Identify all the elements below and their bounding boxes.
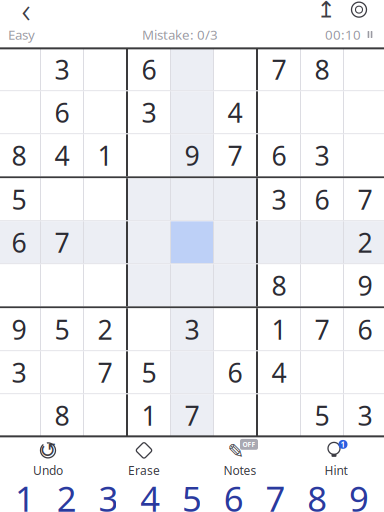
- button[interactable]: 2: [46, 478, 88, 512]
- staticText: 7: [271, 52, 286, 87]
- button[interactable]: ↺: [0, 442, 96, 476]
- button[interactable]: Cell row 2 column 6: [214, 91, 256, 133]
- button[interactable]: 4: [129, 478, 171, 512]
- button[interactable]: 1: [288, 442, 384, 476]
- button[interactable]: Cell row 8 column 6: [214, 351, 256, 393]
- button[interactable]: Cell row 7 column 5: [171, 308, 213, 350]
- button[interactable]: Settings: [342, 0, 376, 25]
- button[interactable]: Cell row 7 column 6: [214, 308, 256, 350]
- button[interactable]: 3: [88, 478, 129, 512]
- button[interactable]: Cell row 4 column 9: [344, 178, 384, 220]
- button[interactable]: Cell row 1 column 2: [41, 48, 83, 90]
- button[interactable]: Cell row 3 column 3: [84, 134, 126, 176]
- button[interactable]: Cell row 6 column 7: [258, 264, 300, 306]
- button[interactable]: Share: [310, 0, 342, 25]
- button[interactable]: 5: [171, 478, 213, 512]
- button[interactable]: Cell row 1 column 8: [301, 48, 343, 90]
- button[interactable]: Back: [6, 0, 46, 25]
- button[interactable]: Cell row 2 column 4: [128, 91, 170, 133]
- button[interactable]: Cell row 1 column 5: [171, 48, 213, 90]
- button[interactable]: 7: [255, 478, 296, 512]
- button[interactable]: Cell row 8 column 1: [0, 351, 40, 393]
- button[interactable]: Cell row 1 column 9: [344, 48, 384, 90]
- button[interactable]: Cell row 7 column 4: [128, 308, 170, 350]
- button[interactable]: Cell row 4 column 7: [258, 178, 300, 220]
- button[interactable]: Cell row 9 column 9: [344, 394, 384, 436]
- button[interactable]: Cell row 4 column 1: [0, 178, 40, 220]
- button[interactable]: Cell row 4 column 4: [128, 178, 170, 220]
- button[interactable]: Pause: [364, 28, 376, 40]
- button[interactable]: Cell row 1 column 7: [258, 48, 300, 90]
- button[interactable]: Cell row 4 column 3: [84, 178, 126, 220]
- button[interactable]: Cell row 7 column 7: [258, 308, 300, 350]
- button[interactable]: Cell row 3 column 8: [301, 134, 343, 176]
- button[interactable]: Cell row 6 column 9: [344, 264, 384, 306]
- button[interactable]: Cell row 7 column 2: [41, 308, 83, 350]
- button[interactable]: Cell row 7 column 3: [84, 308, 126, 350]
- button[interactable]: Cell row 1 column 3: [84, 48, 126, 90]
- button[interactable]: Cell row 9 column 3: [84, 394, 126, 436]
- staticText: 9: [184, 138, 199, 173]
- button[interactable]: Cell row 4 column 2: [41, 178, 83, 220]
- button[interactable]: Cell row 5 column 9: [344, 221, 384, 263]
- button[interactable]: Cell row 3 column 7: [258, 134, 300, 176]
- button[interactable]: Cell row 3 column 6: [214, 134, 256, 176]
- button[interactable]: Cell row 9 column 7: [258, 394, 300, 436]
- button[interactable]: Cell row 1 column 1: [0, 48, 40, 90]
- button[interactable]: ✎: [192, 442, 288, 476]
- button[interactable]: Cell row 5 column 1: [0, 221, 40, 263]
- button[interactable]: Cell row 9 column 1: [0, 394, 40, 436]
- button[interactable]: 8: [296, 478, 338, 512]
- button[interactable]: Cell row 8 column 7: [258, 351, 300, 393]
- button[interactable]: Cell row 3 column 5: [171, 134, 213, 176]
- button[interactable]: Erase: [96, 442, 192, 476]
- button[interactable]: 6: [213, 478, 255, 512]
- button[interactable]: Cell row 4 column 8: [301, 178, 343, 220]
- button[interactable]: Cell row 1 column 6: [214, 48, 256, 90]
- button[interactable]: Cell row 3 column 1: [0, 134, 40, 176]
- button[interactable]: Cell row 5 column 2: [41, 221, 83, 263]
- button[interactable]: Cell row 2 column 2: [41, 91, 83, 133]
- button[interactable]: Cell row 3 column 2: [41, 134, 83, 176]
- button[interactable]: Cell row 8 column 4: [128, 351, 170, 393]
- button[interactable]: 9: [338, 478, 380, 512]
- button[interactable]: Cell row 9 column 8: [301, 394, 343, 436]
- button[interactable]: Cell row 7 column 9: [344, 308, 384, 350]
- button[interactable]: Cell row 4 column 6: [214, 178, 256, 220]
- button[interactable]: Cell row 9 column 6: [214, 394, 256, 436]
- button[interactable]: Cell row 1 column 4: [128, 48, 170, 90]
- button[interactable]: Cell row 9 column 2: [41, 394, 83, 436]
- button[interactable]: Cell row 9 column 4: [128, 394, 170, 436]
- button[interactable]: Cell row 8 column 3: [84, 351, 126, 393]
- button[interactable]: Cell row 7 column 1: [0, 308, 40, 350]
- button[interactable]: Cell row 7 column 8: [301, 308, 343, 350]
- button[interactable]: Cell row 4 column 5: [171, 178, 213, 220]
- button[interactable]: 1: [4, 478, 46, 512]
- button[interactable]: Cell row 9 column 5: [171, 394, 213, 436]
